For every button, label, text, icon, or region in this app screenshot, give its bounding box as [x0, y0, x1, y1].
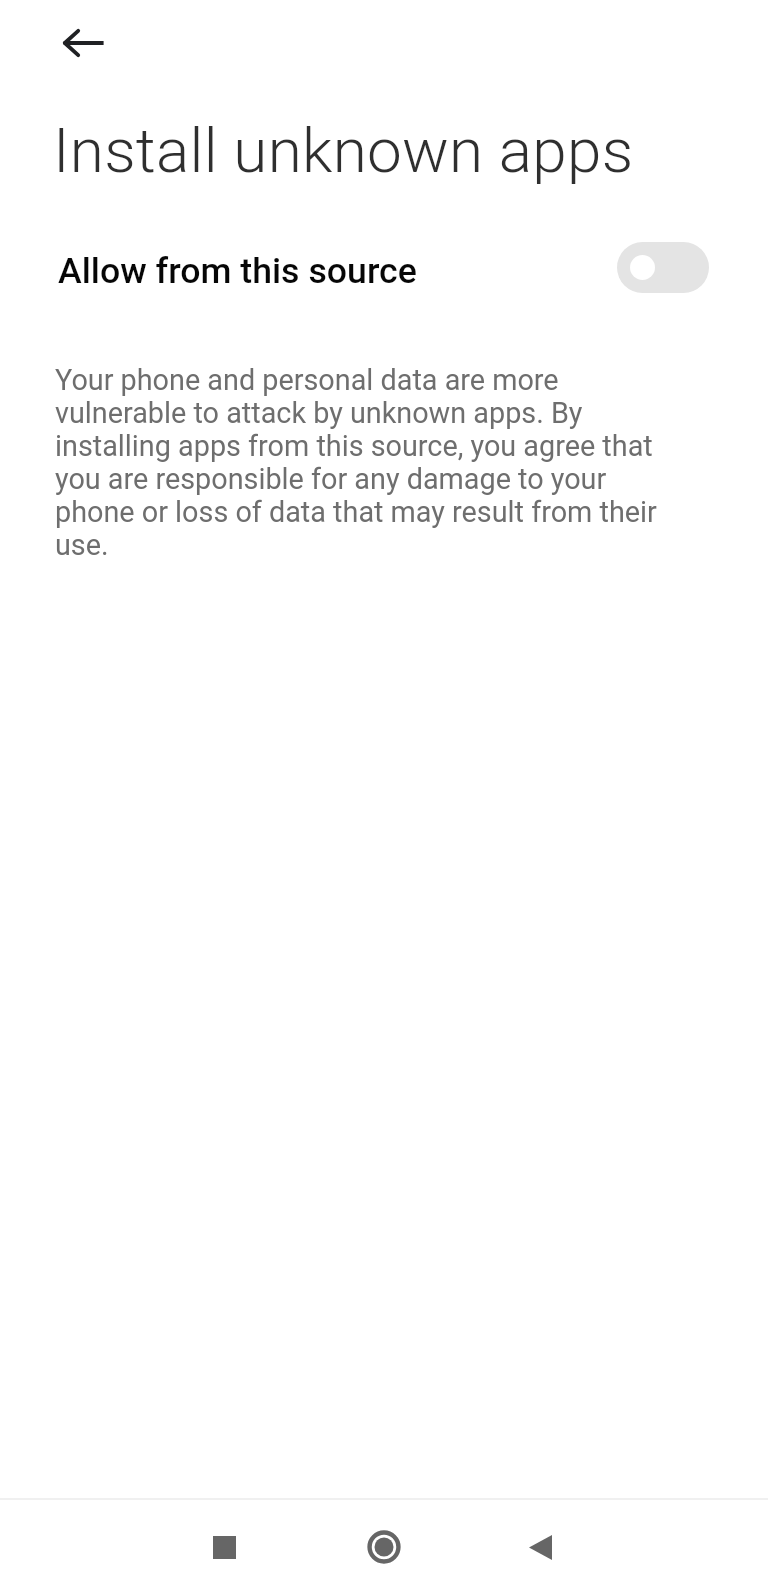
staticText: Allow from this source [58, 250, 417, 292]
button[interactable]: Navigate up [35, 0, 131, 86]
button[interactable]: Back [493, 1500, 587, 1593]
button[interactable]: Recent apps [177, 1500, 271, 1593]
button[interactable]: Home [337, 1500, 431, 1593]
button[interactable]: Allow from this source [0, 232, 768, 302]
staticText: Your phone and personal data are more vu… [55, 363, 680, 562]
staticText: Install unknown apps [53, 114, 634, 187]
